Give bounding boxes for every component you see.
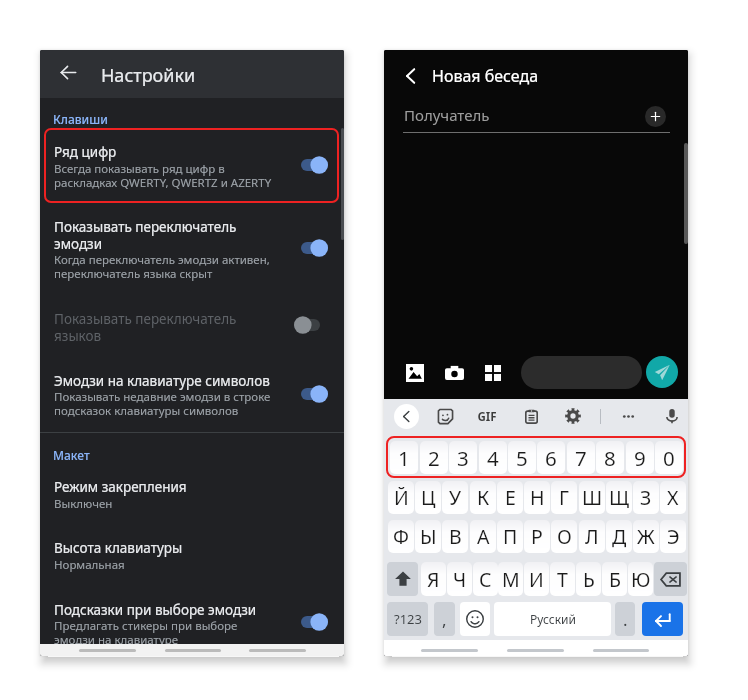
button[interactable]: Add recipient — [645, 106, 666, 127]
button[interactable]: Б — [602, 562, 627, 596]
button[interactable]: Settings — [560, 403, 586, 429]
button[interactable]: С — [473, 562, 498, 596]
button[interactable] — [40, 364, 344, 423]
button[interactable]: Back — [46, 50, 90, 94]
button[interactable]: Е — [497, 481, 523, 514]
staticText: 9 — [634, 444, 646, 472]
button[interactable] — [40, 593, 344, 652]
button[interactable]: 5 — [508, 441, 536, 474]
button[interactable]: More — [615, 403, 641, 429]
button[interactable]: Л — [579, 520, 605, 553]
button[interactable]: Р — [524, 520, 550, 553]
button[interactable]: Clipboard — [518, 403, 544, 429]
button[interactable]: 4 — [479, 441, 507, 474]
button[interactable]: Ш — [579, 481, 605, 514]
button[interactable]: ?123 — [387, 602, 428, 636]
button[interactable]: Ж — [633, 520, 659, 553]
button[interactable]: Toggle — [294, 315, 320, 335]
staticText: О — [557, 523, 572, 550]
button[interactable]: 6 — [537, 441, 565, 474]
button[interactable]: 8 — [596, 441, 624, 474]
button[interactable]: 0 — [655, 441, 683, 474]
staticText: И — [529, 566, 544, 593]
staticText: З — [640, 484, 652, 511]
button[interactable]: Ь — [576, 562, 601, 596]
staticText: Д — [612, 523, 627, 550]
button[interactable]: У — [442, 481, 468, 514]
staticText: 4 — [487, 444, 499, 472]
button[interactable]: Toggle — [301, 612, 328, 632]
button[interactable]: Т — [550, 562, 575, 596]
button[interactable]: Stickers — [432, 403, 458, 429]
button[interactable]: Д — [606, 520, 632, 553]
button[interactable]: Enter — [642, 602, 683, 636]
staticText: Ж — [637, 523, 655, 550]
button[interactable]: П — [497, 520, 523, 553]
button[interactable]: Apps — [478, 358, 508, 388]
button[interactable]: З — [633, 481, 659, 514]
button[interactable]: Й — [388, 481, 414, 514]
staticText: Всегда показывать ряд цифр в раскладках … — [54, 161, 272, 190]
button[interactable]: 2 — [420, 441, 448, 474]
button[interactable] — [40, 531, 344, 577]
staticText: Показывать недавние эмодзи в строке подс… — [54, 389, 271, 418]
button[interactable]: О — [551, 520, 577, 553]
button[interactable]: 9 — [626, 441, 654, 474]
button[interactable]: Toggle — [301, 155, 328, 175]
button[interactable]: Э — [660, 520, 686, 553]
button[interactable]: Toggle — [301, 384, 328, 404]
button[interactable]: 3 — [449, 441, 477, 474]
staticText: Ь — [583, 566, 595, 593]
button[interactable]: И — [524, 562, 549, 596]
button[interactable]: Ц — [415, 481, 441, 514]
button[interactable]: В — [442, 520, 468, 553]
staticText: Ф — [393, 523, 409, 550]
staticText: . — [623, 608, 628, 631]
button[interactable]: GIF — [475, 409, 499, 425]
button[interactable]: Г — [551, 481, 577, 514]
staticText: 0 — [663, 444, 675, 472]
button[interactable]: Voice — [659, 403, 685, 429]
staticText: ?123 — [394, 610, 422, 628]
button[interactable]: Camera — [439, 358, 469, 388]
button[interactable]: Toggle — [301, 238, 328, 258]
staticText: Н — [530, 484, 545, 511]
staticText: Ряд цифр — [54, 143, 117, 161]
button[interactable]: Ы — [415, 520, 441, 553]
staticText: Макет — [53, 447, 90, 463]
button[interactable]: Collapse — [394, 404, 419, 429]
button[interactable]: Shift — [387, 562, 418, 596]
staticText: Подсказки при выборе эмодзи — [54, 601, 257, 619]
button[interactable]: А — [470, 520, 496, 553]
staticText: Х — [667, 484, 679, 511]
button[interactable]: Send — [646, 356, 678, 388]
button[interactable]: . — [615, 602, 635, 636]
staticText: Новая беседа — [432, 65, 539, 87]
button[interactable] — [40, 470, 344, 516]
button[interactable]: Ю — [628, 562, 653, 596]
button[interactable]: Х — [660, 481, 686, 514]
button[interactable]: Gallery — [400, 358, 430, 388]
button[interactable]: Русский — [494, 602, 611, 636]
button[interactable]: Щ — [606, 481, 632, 514]
button[interactable]: К — [470, 481, 496, 514]
staticText: Щ — [609, 484, 630, 511]
button[interactable]: Н — [524, 481, 550, 514]
button[interactable]: 1 — [390, 441, 418, 474]
button[interactable] — [40, 302, 344, 348]
staticText: Предлагать стикеры при выборе эмодзи на … — [54, 618, 238, 647]
button[interactable]: Ф — [388, 520, 414, 553]
button[interactable]: Backspace — [654, 562, 687, 596]
button[interactable]: Message — [521, 356, 642, 389]
button[interactable] — [40, 135, 344, 195]
button[interactable]: Emoji — [460, 602, 490, 636]
staticText: Е — [505, 484, 516, 511]
button[interactable]: Я — [421, 562, 446, 596]
button[interactable]: Ч — [447, 562, 472, 596]
button[interactable]: Back — [392, 57, 430, 95]
button[interactable] — [40, 210, 344, 286]
staticText: Й — [394, 484, 409, 511]
button[interactable]: М — [498, 562, 523, 596]
button[interactable]: , — [434, 602, 455, 636]
button[interactable]: 7 — [567, 441, 595, 474]
